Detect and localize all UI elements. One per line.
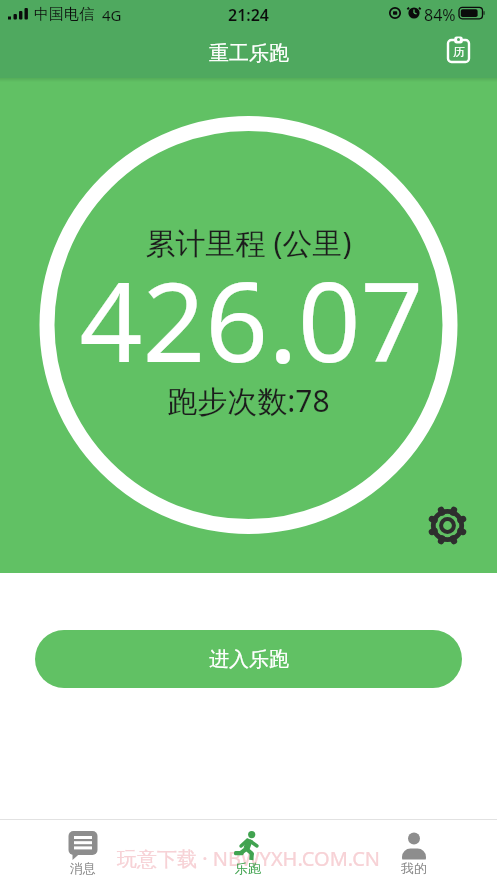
staticText: 历: [444, 44, 474, 59]
button[interactable]: 我的: [331, 820, 497, 883]
button[interactable]: 消息: [0, 820, 165, 883]
staticText: 进入乐跑: [209, 647, 289, 672]
button[interactable]: 历: [444, 35, 474, 65]
staticText: 重工乐跑: [209, 41, 289, 66]
staticText: 跑步次数:78: [0, 380, 497, 421]
staticText: 中国电信: [34, 5, 94, 24]
staticText: 84%: [424, 4, 456, 26]
staticText: 消息: [70, 860, 96, 876]
staticText: 玩意下载 · NBWYXH.COM.CN: [0, 845, 497, 872]
staticText: 426.07: [3, 244, 497, 394]
staticText: 4G: [102, 5, 122, 25]
staticText: 累计里程 (公里): [0, 222, 497, 263]
button[interactable]: 乐跑: [165, 820, 331, 883]
staticText: 我的: [401, 860, 427, 876]
button[interactable]: [425, 503, 470, 548]
button[interactable]: 进入乐跑: [35, 630, 462, 688]
staticText: 乐跑: [235, 860, 261, 876]
staticText: 21:24: [0, 4, 497, 26]
